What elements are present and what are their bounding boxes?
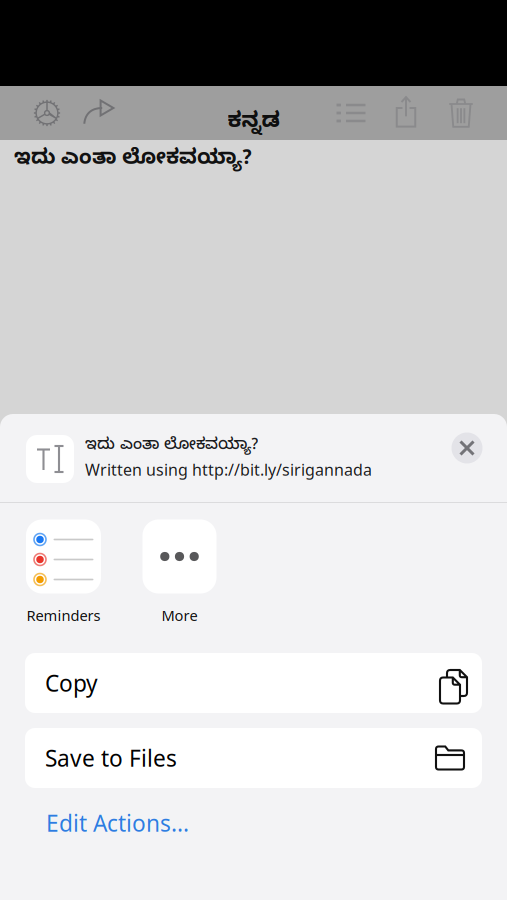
button[interactable]: Edit Actions... <box>46 808 189 838</box>
button[interactable]: List <box>336 102 365 123</box>
staticText: More <box>161 605 197 625</box>
button[interactable]: Forward <box>83 99 115 124</box>
button[interactable]: Save to Files <box>25 728 482 788</box>
button[interactable]: Delete <box>448 98 473 128</box>
button[interactable]: More <box>142 519 216 625</box>
staticText: Edit Actions... <box>46 808 189 838</box>
staticText: ಇದು ಎಂತಾ ಲೋಕವಯ್ಯಾ? <box>85 436 258 458</box>
button[interactable]: Share <box>393 96 418 127</box>
button[interactable]: Copy <box>25 653 482 713</box>
staticText: Save to Files <box>45 743 177 773</box>
staticText: Reminders <box>26 605 100 625</box>
staticText: ಇದು ಎಂತಾ ಲೋಕವಯ್ಯಾ? <box>14 147 252 175</box>
button[interactable]: Settings <box>33 99 60 126</box>
staticText: Written using http://bit.ly/sirigannada <box>85 459 372 480</box>
staticText: Copy <box>45 668 98 698</box>
button[interactable]: Reminders <box>26 519 101 625</box>
button[interactable]: Close <box>451 432 482 463</box>
staticText: ಕನ್ನಡ <box>227 109 279 139</box>
